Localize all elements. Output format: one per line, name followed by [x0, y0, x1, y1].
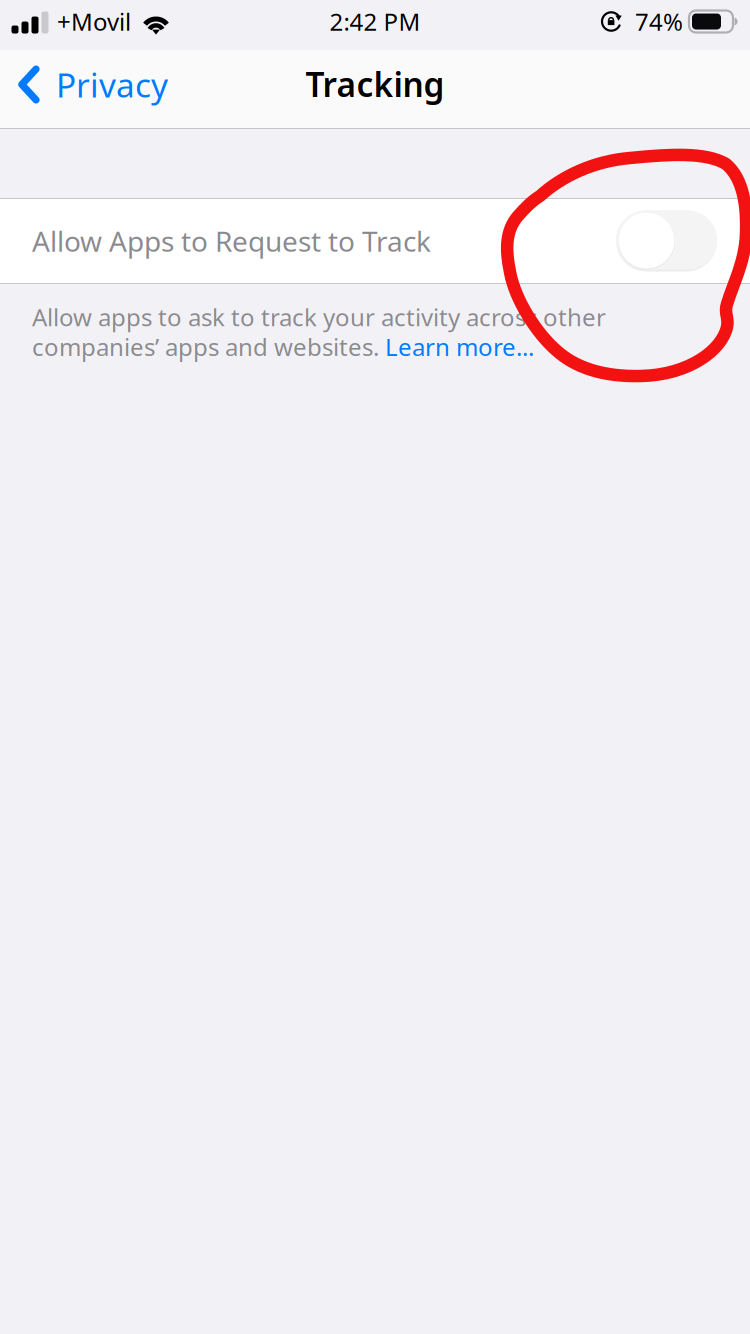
staticText: 2:42 PM: [329, 6, 420, 37]
button[interactable]: Allow Apps to Request to Track, off: [0, 199, 750, 283]
staticText: Allow apps to ask to track your activity…: [32, 301, 606, 333]
button[interactable]: Back to Privacy: [0, 50, 182, 128]
staticText: Tracking: [305, 62, 444, 106]
staticText: +Movil: [57, 6, 131, 37]
staticText: companies’ apps and websites.: [32, 331, 385, 363]
staticText: Privacy: [56, 62, 168, 107]
button[interactable]: Learn more...: [385, 331, 534, 363]
staticText: 74%: [635, 6, 683, 37]
staticText: Allow Apps to Request to Track: [32, 222, 431, 260]
staticText: Learn more...: [385, 331, 534, 363]
